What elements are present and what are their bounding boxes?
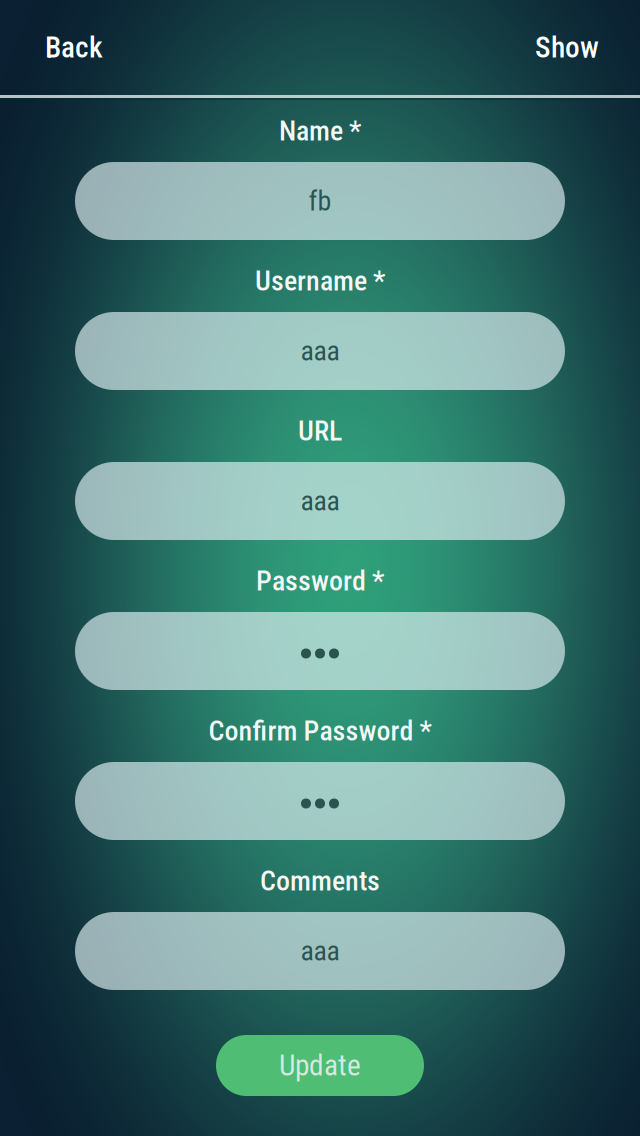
button[interactable]: Back	[0, 18, 117, 77]
button[interactable]: Show	[521, 18, 640, 77]
staticText: Comments	[260, 865, 380, 897]
staticText: Show	[535, 30, 599, 65]
staticText: Name *	[279, 115, 361, 147]
button[interactable]: aaa	[75, 912, 565, 990]
staticText: Confirm Password *	[208, 715, 431, 747]
button[interactable]: Update	[216, 1035, 424, 1096]
staticText: Update	[279, 1048, 361, 1083]
staticText: URL	[298, 415, 342, 447]
button[interactable]: fb	[75, 162, 565, 240]
button[interactable]: aaa	[75, 312, 565, 390]
staticText: aaa	[300, 335, 339, 367]
staticText: Password *	[256, 565, 384, 597]
button[interactable]: aaa	[75, 462, 565, 540]
staticText: aaa	[300, 935, 339, 967]
staticText: fb	[308, 185, 331, 217]
button[interactable]	[75, 762, 565, 840]
button[interactable]	[75, 612, 565, 690]
staticText: Back	[45, 30, 103, 65]
staticText: Username *	[255, 265, 385, 297]
staticText: aaa	[300, 485, 339, 517]
